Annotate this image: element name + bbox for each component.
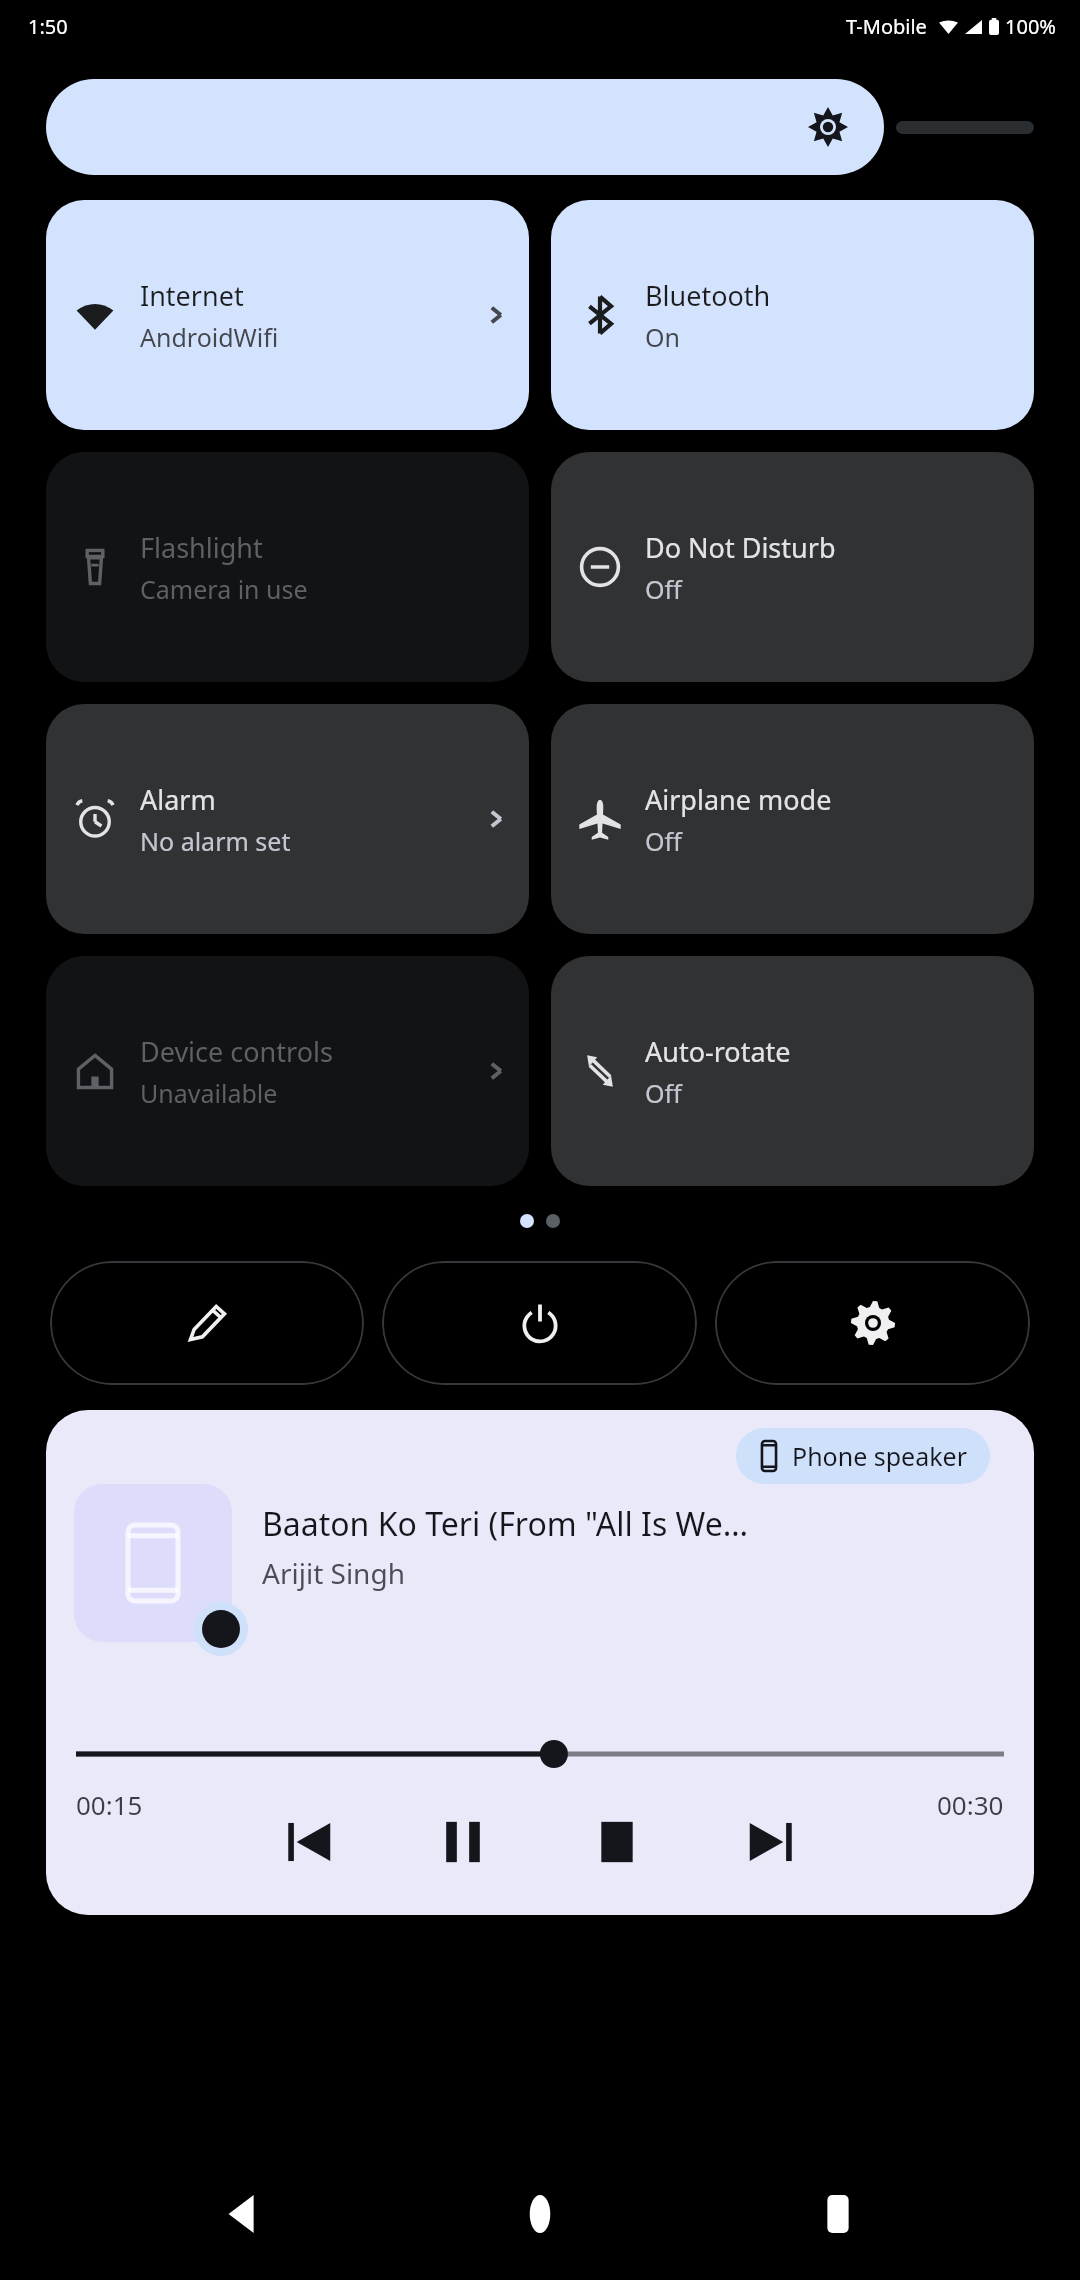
button[interactable]: Phone speaker	[736, 1428, 990, 1484]
staticText: Off	[645, 1076, 682, 1110]
button[interactable]: Previous	[270, 1803, 348, 1881]
button[interactable]: Back	[188, 2159, 298, 2269]
button[interactable]: Alarm	[46, 704, 529, 934]
staticText: Unavailable	[140, 1076, 278, 1110]
staticText: Off	[645, 824, 682, 858]
staticText: Bluetooth	[645, 277, 771, 314]
staticText: 100%	[1005, 13, 1056, 40]
button[interactable]: Device controls	[46, 956, 529, 1186]
button[interactable]: Brightness	[46, 79, 884, 175]
button[interactable]: Airplane mode	[551, 704, 1034, 934]
button[interactable]: Bluetooth	[551, 200, 1034, 430]
staticText: On	[645, 320, 680, 354]
staticText: Internet	[140, 277, 244, 314]
staticText: Alarm	[140, 781, 216, 818]
button[interactable]: Phone speaker	[46, 1410, 1034, 1915]
staticText: No alarm set	[140, 824, 291, 858]
button[interactable]: Power	[382, 1261, 697, 1385]
button[interactable]: Edit	[50, 1261, 364, 1385]
staticText: Camera in use	[140, 572, 308, 606]
staticText: Airplane mode	[645, 781, 832, 818]
button[interactable]: Recents	[783, 2159, 893, 2269]
staticText: Off	[645, 572, 682, 606]
staticText: Do Not Disturb	[645, 529, 836, 566]
button[interactable]: Next	[732, 1803, 810, 1881]
staticText: 1:50	[28, 13, 68, 40]
button[interactable]: Flashlight	[46, 452, 529, 682]
button[interactable]: Stop	[578, 1803, 656, 1881]
staticText: T-Mobile	[846, 13, 927, 40]
button[interactable]: Internet	[46, 200, 529, 430]
button[interactable]: Pause	[424, 1803, 502, 1881]
staticText: 00:30	[937, 1787, 1004, 1822]
staticText: Arijit Singh	[262, 1554, 405, 1592]
staticText: Phone speaker	[792, 1439, 968, 1473]
button[interactable]: Auto-rotate	[551, 956, 1034, 1186]
button[interactable]: Do Not Disturb	[551, 452, 1034, 682]
staticText: AndroidWifi	[140, 320, 279, 354]
staticText: Flashlight	[140, 529, 263, 566]
staticText: Device controls	[140, 1033, 333, 1070]
staticText: Auto-rotate	[645, 1033, 791, 1070]
button[interactable]: Home	[485, 2159, 595, 2269]
staticText: Baaton Ko Teri (From "All Is We…	[262, 1502, 749, 1546]
button[interactable]: Settings	[715, 1261, 1030, 1385]
staticText: 00:15	[76, 1787, 143, 1822]
